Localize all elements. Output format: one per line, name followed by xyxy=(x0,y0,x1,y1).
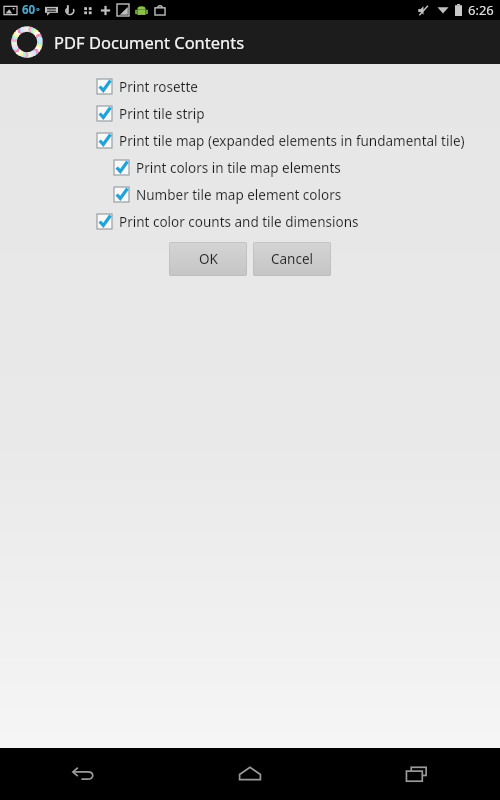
button[interactable]: Recent apps xyxy=(333,748,500,800)
staticText: Print tile map (expanded elements in fun… xyxy=(119,132,465,150)
button[interactable]: Print tile map (expanded elements in fun… xyxy=(0,127,500,154)
staticText: Print tile strip xyxy=(119,105,205,123)
staticText: Print color counts and tile dimensions xyxy=(119,213,359,231)
button[interactable]: OK xyxy=(169,242,247,276)
button[interactable]: Home xyxy=(166,748,333,800)
staticText: Number tile map element colors xyxy=(136,186,342,204)
staticText: Print rosette xyxy=(119,78,198,96)
staticText: 6:26 xyxy=(468,1,494,19)
button[interactable]: Cancel xyxy=(253,242,331,276)
button[interactable]: PDF Document Contents xyxy=(0,20,500,64)
staticText: ° xyxy=(36,4,40,16)
button[interactable]: Print tile strip xyxy=(0,100,500,127)
button[interactable]: Print rosette xyxy=(0,73,500,100)
staticText: 60 xyxy=(22,2,36,18)
staticText: PDF Document Contents xyxy=(54,31,245,53)
button[interactable]: Print color counts and tile dimensions xyxy=(0,208,500,235)
staticText: OK xyxy=(199,250,218,268)
button[interactable]: Number tile map element colors xyxy=(0,181,500,208)
button[interactable]: Print colors in tile map elements xyxy=(0,154,500,181)
staticText: Cancel xyxy=(271,250,314,268)
staticText: Print colors in tile map elements xyxy=(136,159,341,177)
button[interactable]: Back xyxy=(0,748,166,800)
